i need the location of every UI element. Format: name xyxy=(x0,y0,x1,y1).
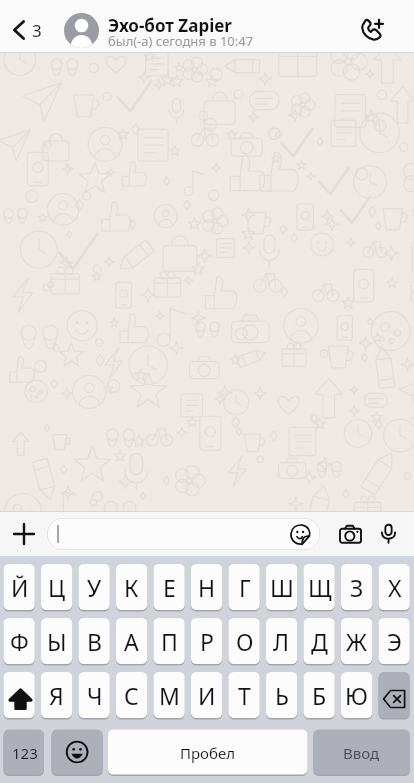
button[interactable]: Д xyxy=(304,618,335,664)
staticText: Е xyxy=(163,572,176,603)
staticText: О xyxy=(236,626,254,657)
button[interactable]: Ввод xyxy=(313,730,410,775)
button[interactable]: И xyxy=(191,672,222,718)
staticText: Ж xyxy=(346,626,367,657)
button[interactable]: Х xyxy=(379,564,410,610)
staticText: 123 xyxy=(12,743,38,763)
button[interactable]: Ф xyxy=(4,618,35,664)
staticText: Ю xyxy=(345,680,368,711)
staticText: Н xyxy=(198,572,216,603)
staticText: Ш xyxy=(270,572,294,603)
button[interactable]: А xyxy=(116,618,147,664)
button[interactable]: 123 xyxy=(4,730,45,775)
button[interactable]: Camera xyxy=(328,511,372,556)
staticText: Ы xyxy=(47,626,67,657)
staticText: У xyxy=(87,572,102,603)
button[interactable]: Ь xyxy=(266,672,297,718)
staticText: Ь xyxy=(275,680,289,711)
staticText: Л xyxy=(273,626,290,657)
button[interactable]: Р xyxy=(191,618,222,664)
staticText: Д xyxy=(311,626,328,657)
button[interactable]: Attach xyxy=(0,511,47,556)
button[interactable]: Ч xyxy=(79,672,110,718)
button[interactable]: Voice message xyxy=(372,511,405,556)
button[interactable]: Ж xyxy=(341,618,372,664)
button[interactable]: Back xyxy=(0,7,64,53)
staticText: Я xyxy=(49,680,64,711)
staticText: Г xyxy=(239,572,251,603)
staticText: М xyxy=(159,680,180,711)
button[interactable]: Emoji xyxy=(52,730,103,775)
staticText: Б xyxy=(312,680,327,711)
button[interactable]: У xyxy=(79,564,110,610)
button[interactable]: Н xyxy=(191,564,222,610)
button[interactable]: Ы xyxy=(41,618,72,664)
button[interactable]: Л xyxy=(266,618,297,664)
button[interactable]: Пробел xyxy=(108,730,308,775)
button[interactable]: С xyxy=(116,672,147,718)
staticText: Р xyxy=(200,626,214,657)
staticText: Й xyxy=(11,572,29,603)
staticText: Ф xyxy=(10,626,29,657)
staticText: Щ xyxy=(308,572,332,603)
staticText: был(-а) сегодня в 10:47 xyxy=(108,32,254,50)
button[interactable]: М xyxy=(154,672,185,718)
button[interactable]: О xyxy=(229,618,260,664)
button[interactable]: Т xyxy=(229,672,260,718)
staticText: Т xyxy=(238,680,251,711)
button[interactable]: Backspace xyxy=(379,672,410,718)
staticText: Ц xyxy=(48,572,66,603)
staticText: Э xyxy=(387,626,402,657)
button[interactable]: Ю xyxy=(341,672,372,718)
button[interactable]: Я xyxy=(41,672,72,718)
button[interactable]: Б xyxy=(304,672,335,718)
button[interactable]: Add call xyxy=(346,7,398,53)
button[interactable]: Й xyxy=(4,564,35,610)
staticText: А xyxy=(124,626,139,657)
staticText: Пробел xyxy=(180,743,236,763)
staticText: И xyxy=(198,680,216,711)
button[interactable]: К xyxy=(116,564,147,610)
button[interactable]: П xyxy=(154,618,185,664)
staticText: П xyxy=(161,626,178,657)
button[interactable]: Щ xyxy=(304,564,335,610)
button[interactable] xyxy=(47,518,320,550)
staticText: К xyxy=(124,572,139,603)
button[interactable]: В xyxy=(79,618,110,664)
staticText: Х xyxy=(388,572,402,603)
button[interactable]: Ц xyxy=(41,564,72,610)
staticText: Ч xyxy=(87,680,103,711)
staticText: Ввод xyxy=(343,743,380,763)
button[interactable] xyxy=(64,13,99,48)
button[interactable]: Э xyxy=(379,618,410,664)
staticText: 3 xyxy=(32,19,42,42)
button[interactable]: Ш xyxy=(266,564,297,610)
button[interactable]: Г xyxy=(229,564,260,610)
staticText: В xyxy=(87,626,102,657)
staticText: С xyxy=(124,680,139,711)
button[interactable]: З xyxy=(341,564,372,610)
button[interactable]: Е xyxy=(154,564,185,610)
button[interactable]: Shift xyxy=(4,672,35,718)
staticText: З xyxy=(350,572,364,603)
staticText: Эхо-бот Zapier xyxy=(108,14,232,37)
